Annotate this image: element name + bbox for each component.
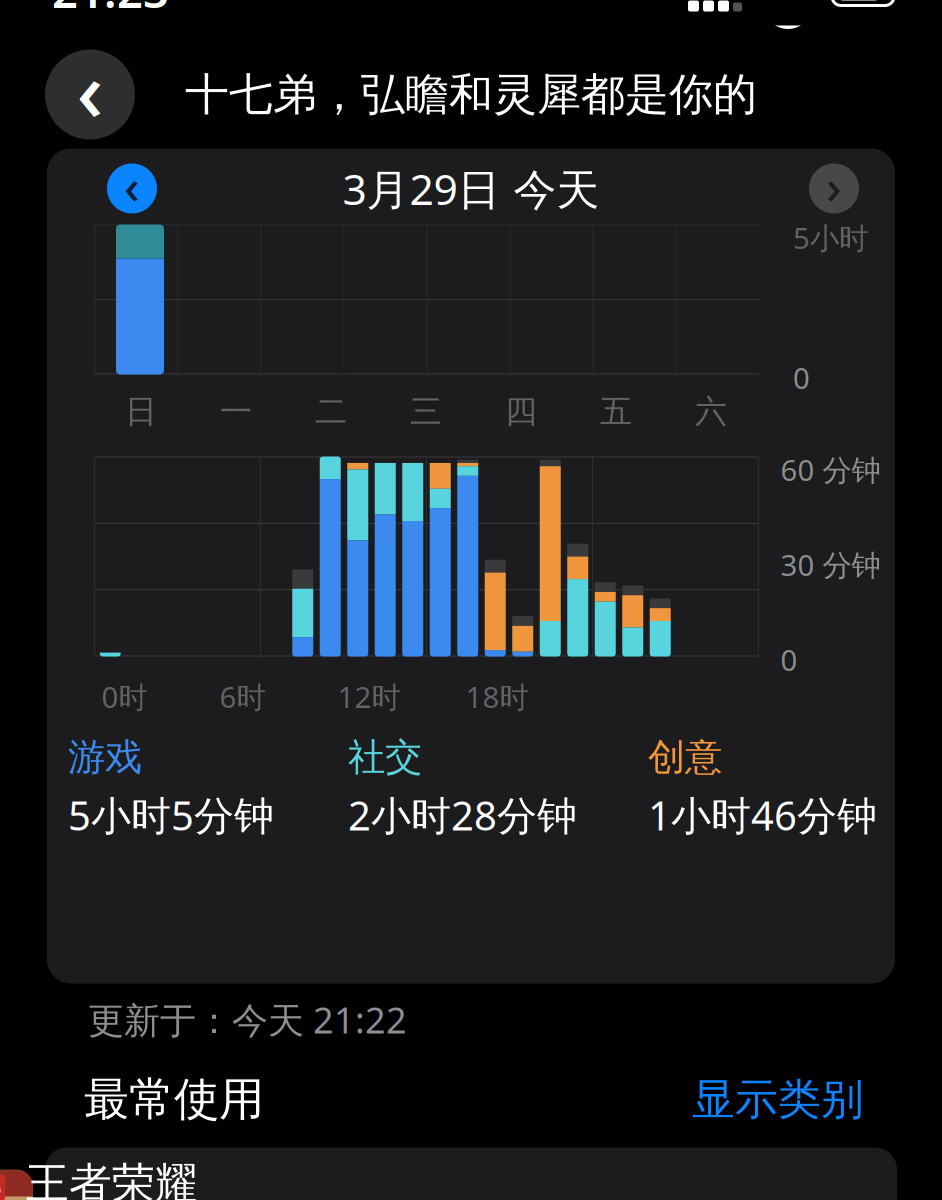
- staticText: 三: [410, 392, 442, 431]
- staticText: 一: [220, 392, 252, 431]
- staticText: ‹: [124, 154, 140, 217]
- staticText: 0: [793, 358, 810, 397]
- staticText: 四: [505, 392, 537, 431]
- staticText: ‹: [76, 35, 103, 144]
- button[interactable]: 后一天: [809, 163, 859, 213]
- staticText: 5v5: [0, 1174, 1, 1200]
- staticText: 创意: [648, 734, 722, 780]
- staticText: 日: [125, 392, 157, 431]
- staticText: 十七弟，弘瞻和灵犀都是你的: [185, 67, 757, 121]
- staticText: 0: [780, 640, 797, 679]
- staticText: 12时: [337, 677, 400, 716]
- staticText: 2小时28分钟: [348, 788, 577, 841]
- staticText: ›: [826, 154, 842, 217]
- staticText: 5小时: [793, 218, 868, 257]
- staticText: 6时: [219, 677, 265, 716]
- staticText: 60 分钟: [780, 450, 880, 489]
- staticText: 21:23: [52, 0, 169, 21]
- button[interactable]: 5v5: [45, 1147, 897, 1200]
- staticText: 二: [315, 392, 347, 431]
- staticText: 更新于：今天 21:22: [88, 996, 407, 1043]
- staticText: 显示类别: [692, 1073, 864, 1126]
- staticText: 1小时46分钟: [648, 788, 877, 841]
- staticText: 社交: [348, 734, 422, 780]
- staticText: 0时: [101, 677, 147, 716]
- staticText: 30 分钟: [780, 545, 880, 584]
- button[interactable]: 显示类别: [692, 1073, 942, 1126]
- staticText: 五: [600, 392, 632, 431]
- staticText: 游戏: [68, 734, 142, 780]
- staticText: 王者荣耀: [26, 1157, 198, 1200]
- staticText: 3月29日 今天: [342, 160, 599, 217]
- button[interactable]: 前一天: [107, 163, 157, 213]
- staticText: 5小时5分钟: [68, 788, 274, 841]
- staticText: 最常使用: [84, 1072, 264, 1127]
- staticText: 18时: [465, 677, 528, 716]
- staticText: 六: [695, 392, 727, 431]
- button[interactable]: 返回: [45, 49, 135, 139]
